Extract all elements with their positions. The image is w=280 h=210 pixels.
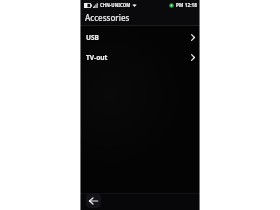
staticText: USB [86,33,100,42]
staticText: CHN-UNICOM [100,2,131,8]
staticText: Accessories [85,12,130,23]
staticText: PM 12:18 [176,2,197,8]
button[interactable]: Back [86,193,101,208]
button[interactable]: USB [80,27,200,48]
staticText: TV-out [86,53,108,62]
button[interactable]: TV-out [80,47,200,68]
